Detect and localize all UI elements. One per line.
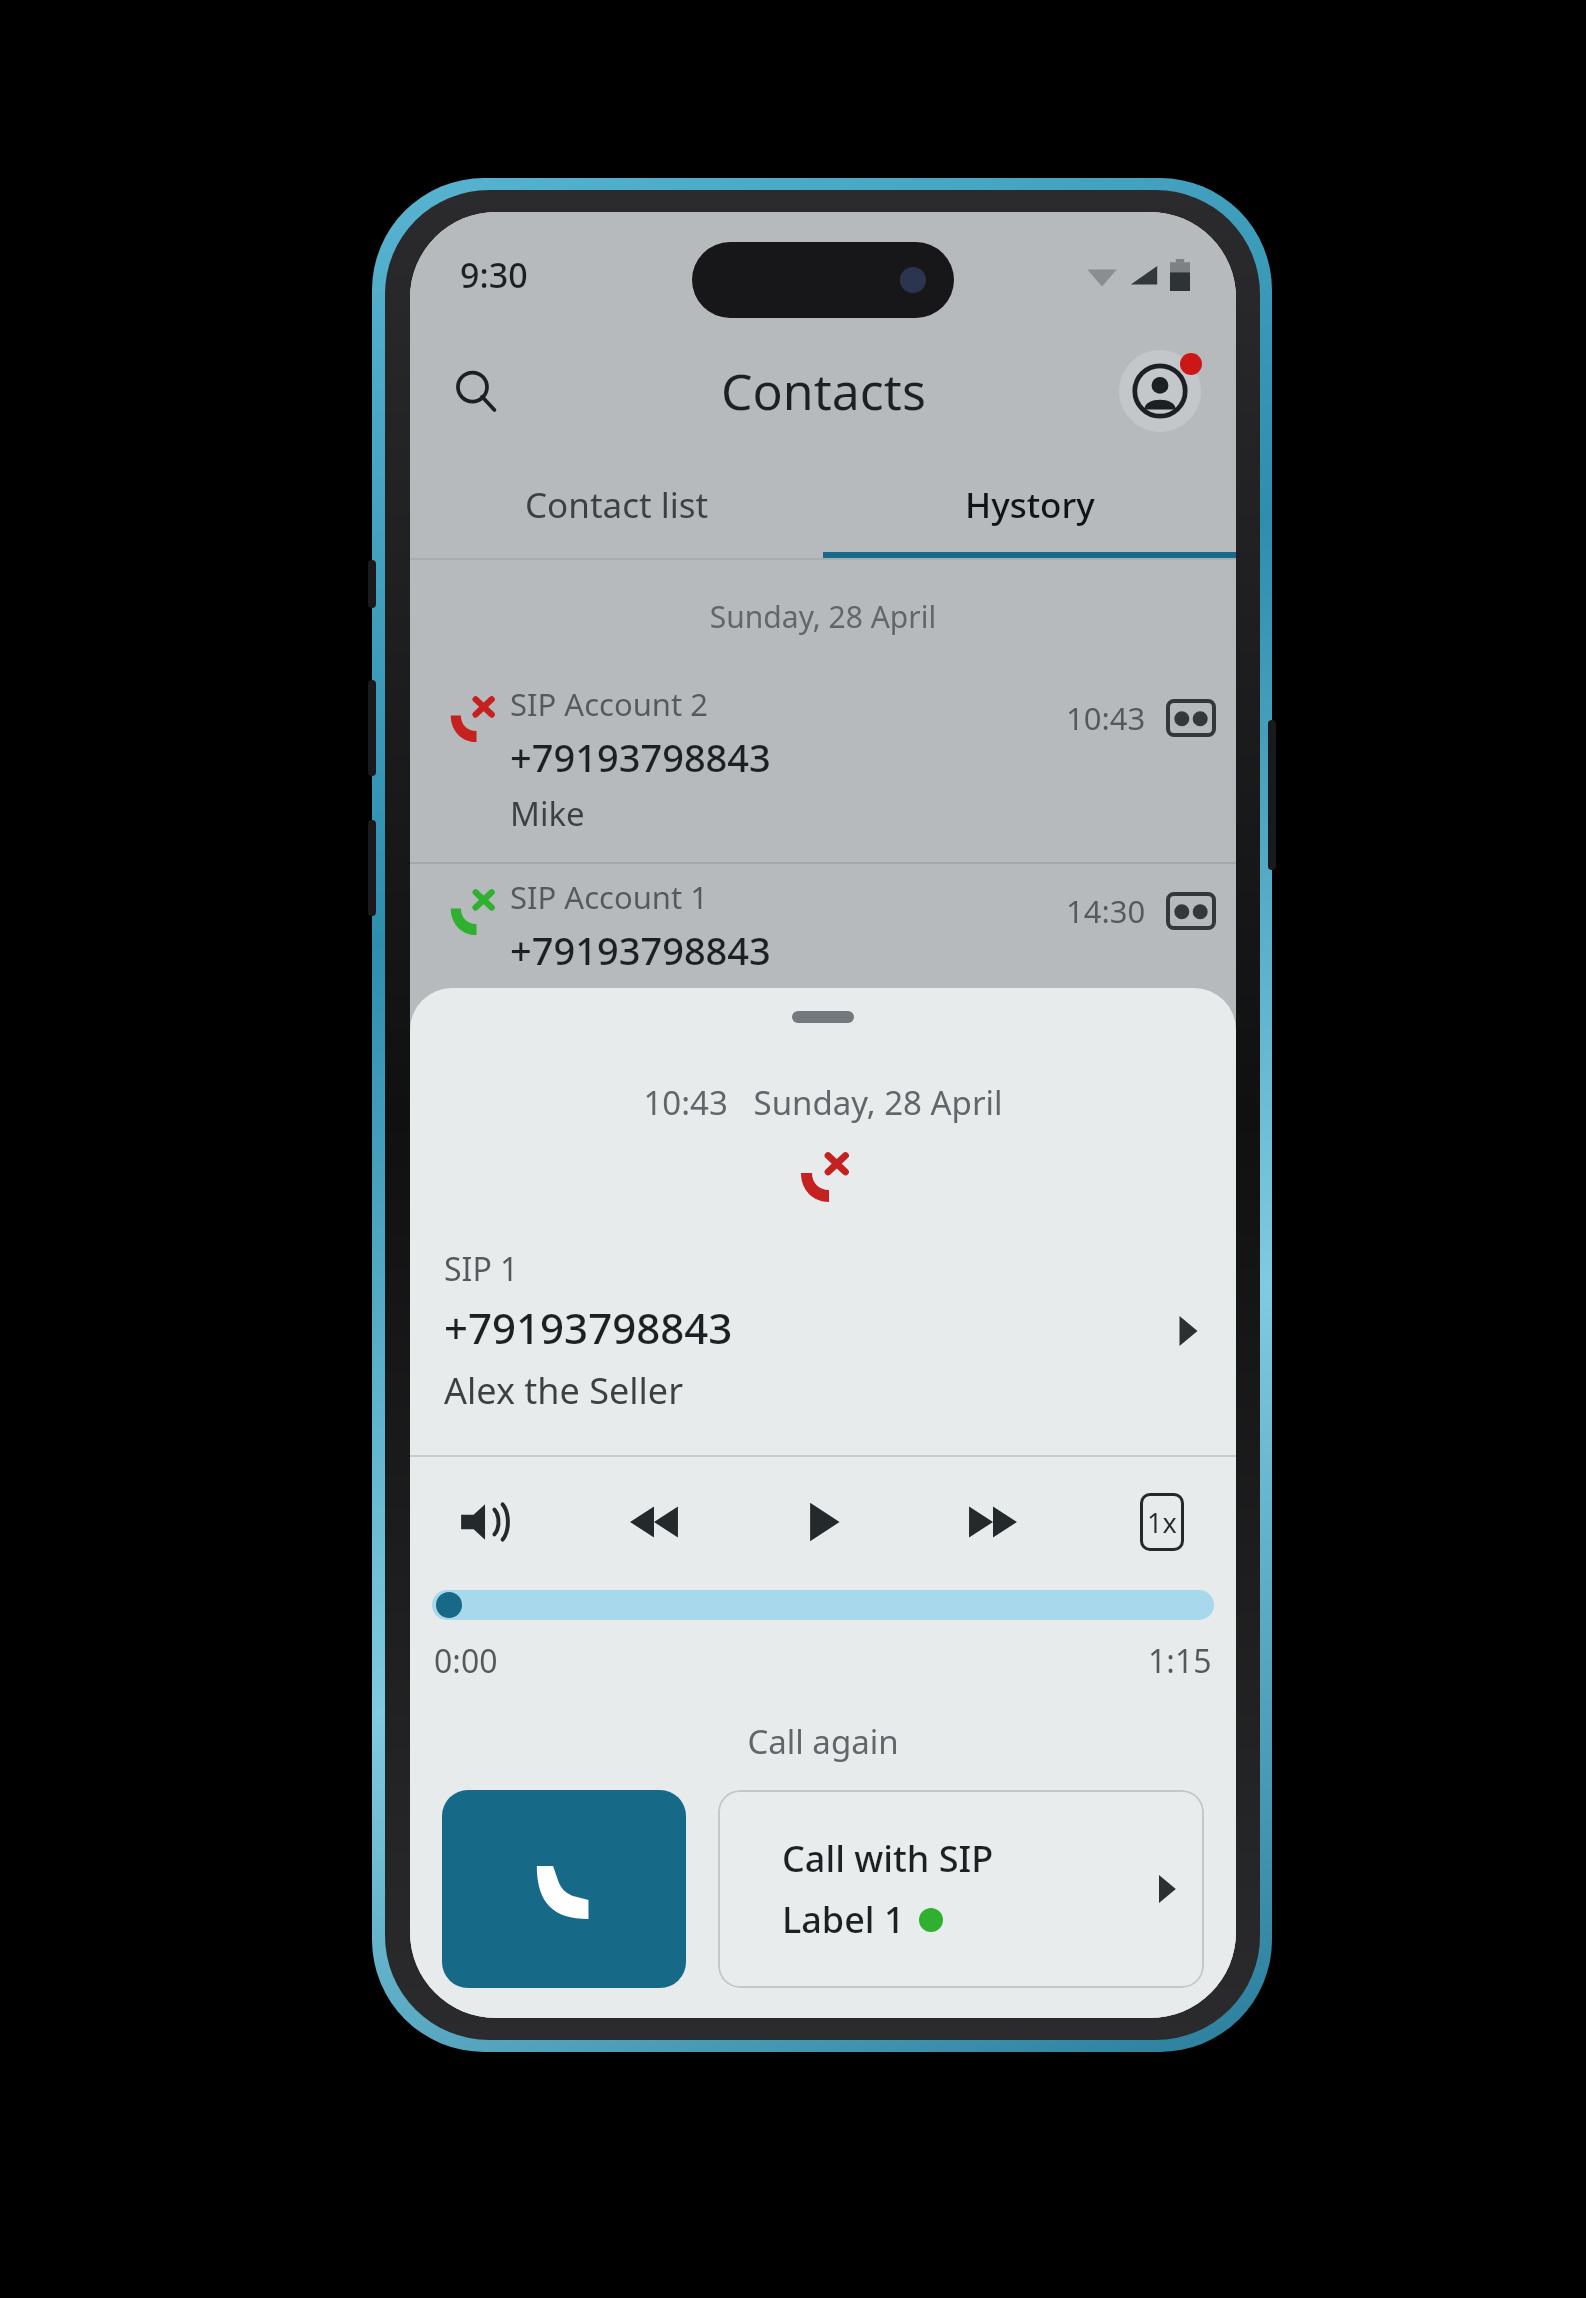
staticText: 10:43 Sunday, 28 April	[410, 1080, 1236, 1125]
button[interactable]: Account	[1112, 343, 1208, 439]
staticText: Alex the Seller	[444, 1366, 684, 1415]
button[interactable]: SIP Account 1	[410, 864, 1236, 1055]
button[interactable]: Speaker	[436, 1474, 532, 1570]
staticText: Label 1	[782, 1895, 905, 1944]
button[interactable]: Contact list	[410, 452, 823, 558]
button[interactable]: Play	[775, 1474, 871, 1570]
staticText: +79193798843	[444, 1299, 733, 1356]
staticText: Contact list	[525, 481, 709, 529]
staticText: Hystory	[965, 481, 1095, 529]
staticText: SIP 1	[444, 1247, 519, 1291]
staticText: 1:15	[1148, 1639, 1212, 1683]
staticText: 9:30	[460, 252, 528, 298]
button[interactable]: SIP 1	[410, 1247, 1236, 1415]
button[interactable]: Search	[434, 349, 518, 433]
staticText: +79193798843	[510, 731, 771, 783]
staticText: Call again	[410, 1719, 1236, 1764]
staticText: SIP Account 1	[510, 876, 708, 918]
staticText: 10:43	[1066, 697, 1146, 739]
staticText: 0:00	[434, 1639, 498, 1683]
staticText: Contacts	[721, 357, 926, 425]
staticText: Mike	[510, 791, 585, 836]
button[interactable]: Playback speed	[1114, 1474, 1210, 1570]
button[interactable]: Hystory	[823, 452, 1236, 558]
button[interactable]: Forward	[945, 1474, 1041, 1570]
button[interactable]: Call	[442, 1790, 686, 1988]
button[interactable]: SIP Account 2	[410, 671, 1236, 862]
button[interactable]: Call with SIP	[718, 1790, 1204, 1988]
staticText: +79193798843	[510, 924, 771, 976]
button[interactable]: Rewind	[606, 1474, 702, 1570]
staticText: 14:30	[1066, 890, 1146, 932]
staticText: Anna	[510, 984, 591, 1029]
staticText: SIP Account 2	[510, 683, 708, 725]
staticText: 1x	[1147, 1504, 1177, 1541]
staticText: Sunday, 28 April	[410, 596, 1236, 637]
staticText: Call with SIP	[782, 1834, 994, 1883]
